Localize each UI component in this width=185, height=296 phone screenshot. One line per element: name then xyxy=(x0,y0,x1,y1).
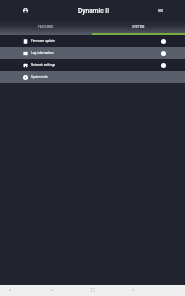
button[interactable]: Back xyxy=(5,285,15,295)
button[interactable]: Log information xyxy=(0,47,185,59)
button[interactable]: System info xyxy=(0,71,185,83)
button[interactable]: Home xyxy=(47,285,57,295)
staticText: Network settings xyxy=(31,63,56,67)
staticText: Dynamic II xyxy=(78,7,109,15)
staticText: System info xyxy=(31,75,48,79)
staticText: FEATURES xyxy=(38,25,54,29)
button[interactable]: Menu xyxy=(150,0,170,21)
button[interactable]: Screenshot xyxy=(128,285,138,295)
button[interactable]: Account xyxy=(15,0,35,21)
button[interactable]: FEATURES xyxy=(0,21,92,35)
staticText: SYSTEM xyxy=(132,25,145,29)
button[interactable]: Recent apps xyxy=(88,285,98,295)
staticText: Firmware update xyxy=(31,39,55,43)
button[interactable]: SYSTEM xyxy=(92,21,185,35)
button[interactable]: Network settings xyxy=(0,59,185,71)
button[interactable]: Firmware update xyxy=(0,35,185,47)
staticText: Log information xyxy=(31,51,54,55)
